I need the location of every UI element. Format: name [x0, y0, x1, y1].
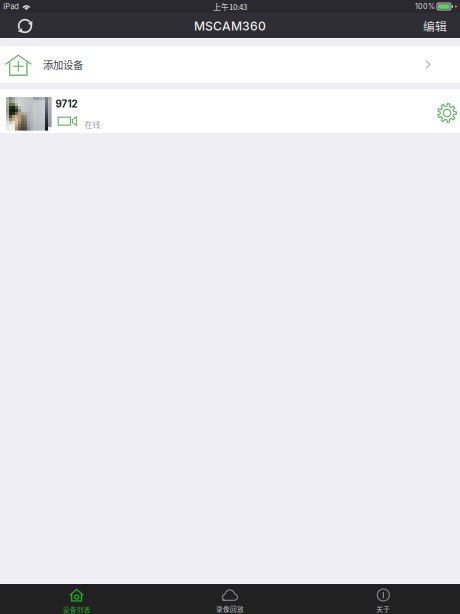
button[interactable]: 关于: [307, 583, 460, 614]
staticText: 设备列表: [63, 605, 91, 614]
staticText: 9712: [55, 98, 77, 110]
staticText: 在线: [84, 118, 100, 130]
button[interactable]: 编辑: [413, 13, 457, 39]
staticText: 上午10:43: [213, 1, 247, 12]
button[interactable]: 录像回放: [153, 583, 307, 614]
button[interactable]: 设备列表: [0, 583, 153, 614]
staticText: iPad: [3, 2, 19, 11]
staticText: 编辑: [423, 17, 447, 34]
staticText: 关于: [376, 604, 390, 614]
staticText: MSCAM360: [194, 19, 266, 33]
staticText: 100%: [415, 2, 435, 11]
staticText: 录像回放: [216, 604, 244, 614]
staticText: 添加设备: [43, 57, 83, 72]
button[interactable]: 添加设备: [0, 46, 460, 83]
button[interactable]: 刷新: [5, 13, 45, 39]
button[interactable]: 9712: [0, 89, 460, 133]
